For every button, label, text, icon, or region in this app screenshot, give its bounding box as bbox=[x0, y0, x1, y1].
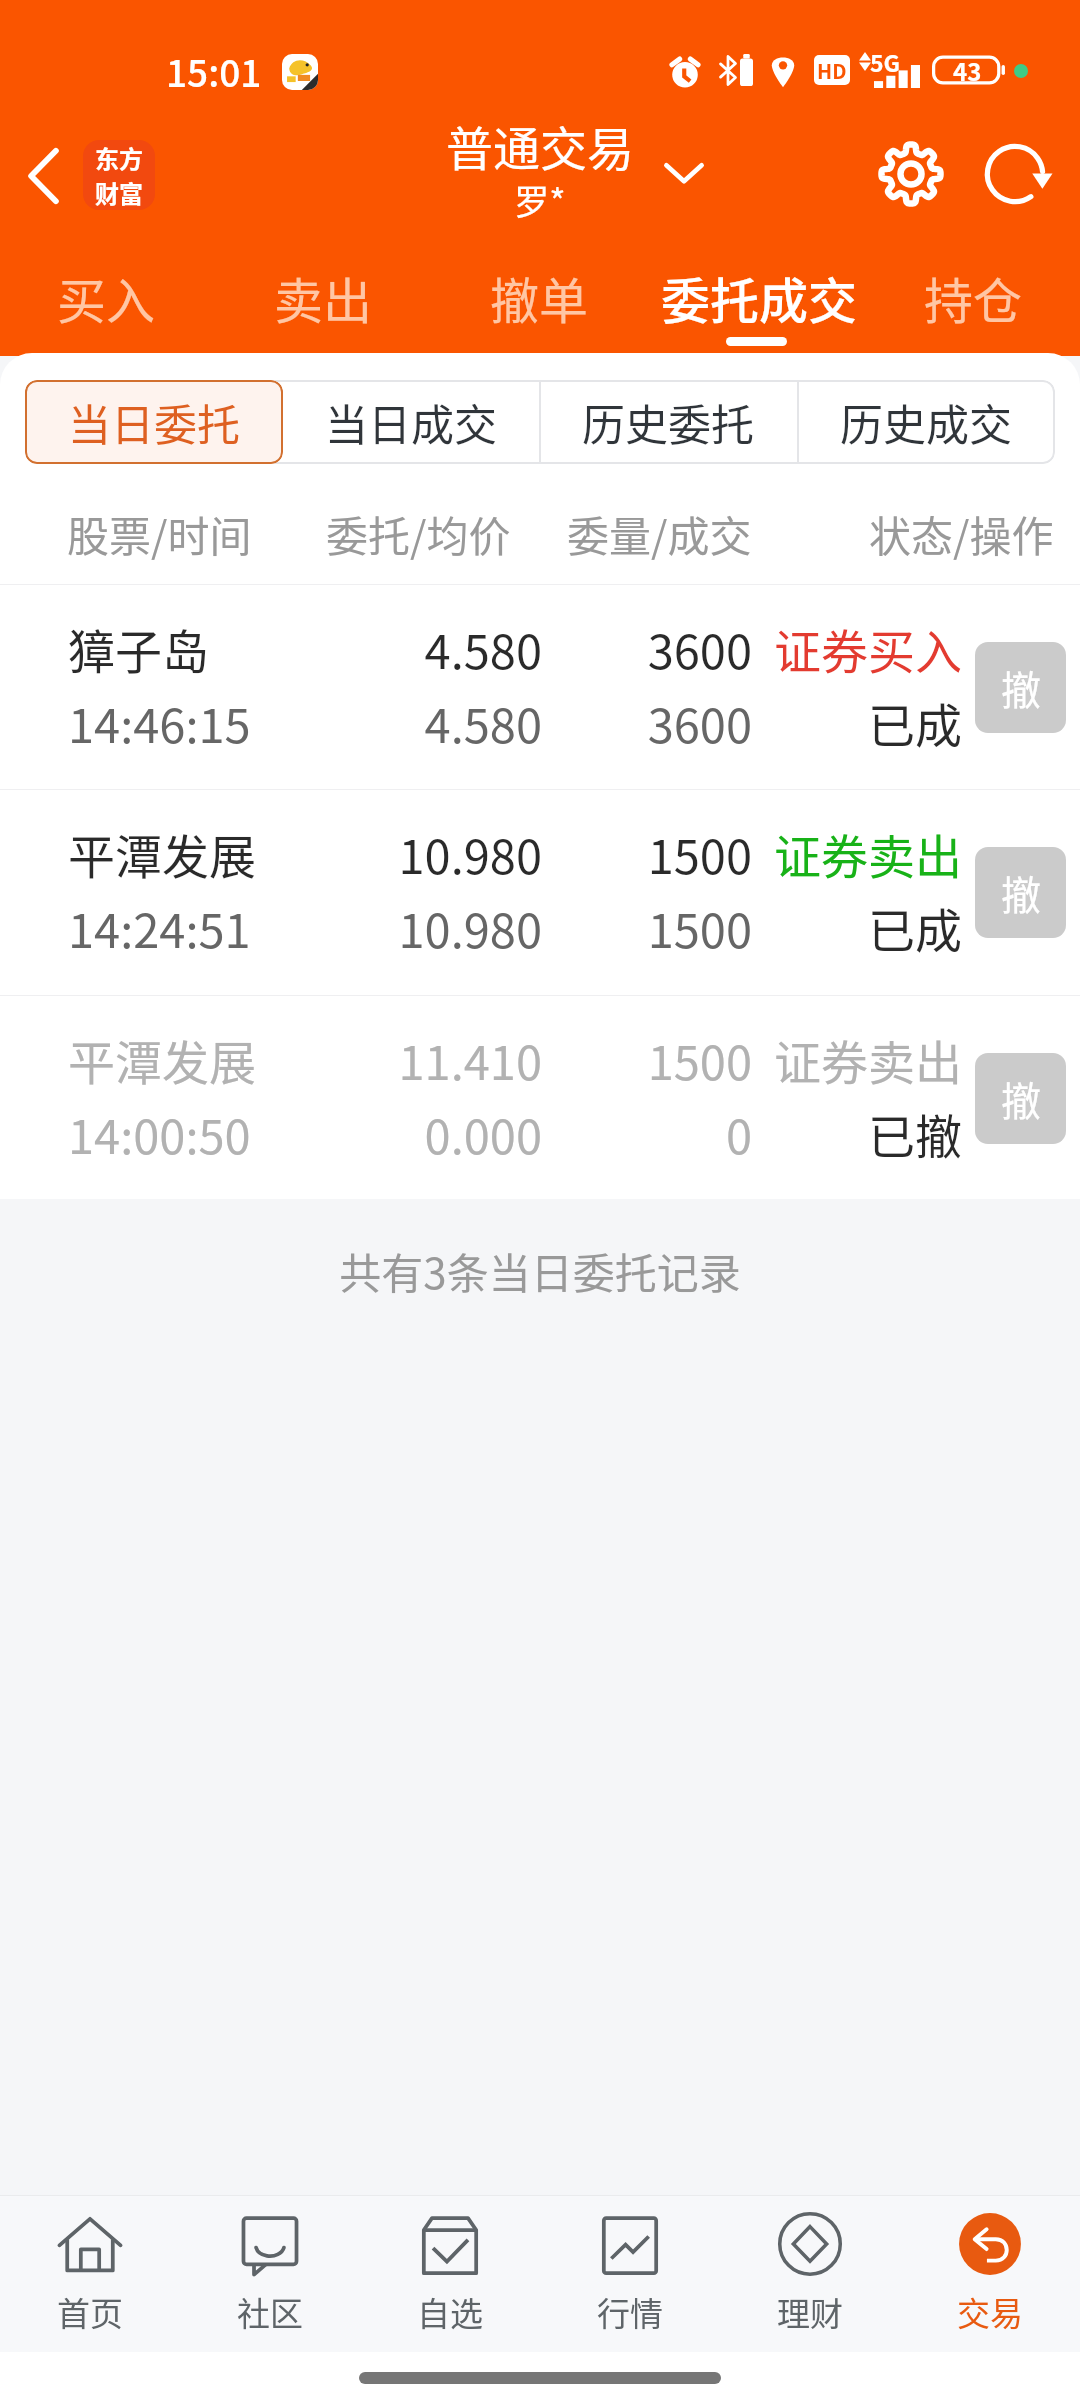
staticText: 财富 bbox=[95, 175, 143, 210]
button[interactable]: 当日成交 bbox=[282, 380, 539, 464]
staticText: 43 bbox=[953, 53, 982, 88]
staticText: 撤 bbox=[1001, 659, 1041, 717]
button[interactable]: 自选 bbox=[360, 2196, 540, 2352]
staticText: 历史委托 bbox=[582, 391, 754, 453]
staticText: 状态/操作 bbox=[869, 503, 1054, 564]
staticText: 证券卖出 bbox=[762, 1025, 962, 1093]
staticText: 股票/时间 bbox=[67, 503, 252, 564]
staticText: 证券卖出 bbox=[762, 819, 962, 887]
staticText: 1500 bbox=[564, 819, 752, 887]
staticText: 已成 bbox=[762, 893, 962, 961]
button[interactable]: 东方财富 bbox=[83, 140, 155, 210]
button[interactable]: 撤单 bbox=[475, 258, 603, 350]
staticText: 卖出 bbox=[274, 262, 373, 333]
button[interactable]: 首页 bbox=[0, 2196, 180, 2352]
staticText: 0 bbox=[564, 1099, 752, 1167]
staticText: 撤 bbox=[1001, 1070, 1041, 1128]
button[interactable]: 理财 bbox=[720, 2196, 900, 2352]
staticText: 平潭发展 bbox=[68, 1025, 256, 1093]
staticText: 证券买入 bbox=[762, 614, 962, 682]
staticText: 社区 bbox=[237, 2288, 303, 2336]
button[interactable]: 历史委托 bbox=[539, 380, 797, 464]
staticText: 11.410 bbox=[230, 1025, 542, 1093]
staticText: 历史成交 bbox=[840, 391, 1012, 453]
button[interactable]: 行情 bbox=[540, 2196, 720, 2352]
staticText: 首页 bbox=[57, 2288, 123, 2336]
staticText: 东方 bbox=[95, 140, 143, 175]
staticText: 0.000 bbox=[230, 1099, 542, 1167]
staticText: 当日委托 bbox=[68, 391, 240, 453]
staticText: 已成 bbox=[762, 688, 962, 756]
staticText: 行情 bbox=[597, 2288, 663, 2336]
staticText: 1500 bbox=[564, 1025, 752, 1093]
staticText: 獐子岛 bbox=[68, 614, 209, 682]
button[interactable]: 持仓 bbox=[909, 258, 1037, 350]
staticText: 3600 bbox=[564, 688, 752, 756]
button[interactable]: 撤 bbox=[975, 1053, 1066, 1144]
button[interactable]: 平潭发展 bbox=[0, 789, 1080, 989]
staticText: 5G bbox=[870, 45, 901, 78]
button[interactable]: 设置 bbox=[868, 131, 954, 217]
staticText: 14:00:50 bbox=[68, 1099, 251, 1167]
staticText: 交易 bbox=[957, 2288, 1023, 2336]
staticText: 14:24:51 bbox=[68, 893, 251, 961]
button[interactable]: 交易 bbox=[900, 2196, 1080, 2352]
staticText: 4.580 bbox=[230, 614, 542, 682]
button[interactable]: 买入 bbox=[42, 258, 170, 350]
staticText: 买入 bbox=[57, 262, 156, 333]
staticText: 1500 bbox=[564, 893, 752, 961]
button[interactable]: 平潭发展 bbox=[0, 995, 1080, 1195]
staticText: 已撤 bbox=[762, 1099, 962, 1167]
button[interactable]: 历史成交 bbox=[797, 380, 1055, 464]
staticText: 10.980 bbox=[230, 893, 542, 961]
button[interactable]: 委托成交 bbox=[647, 258, 871, 350]
staticText: 10.980 bbox=[230, 819, 542, 887]
staticText: 委托/均价 bbox=[326, 503, 511, 564]
button[interactable]: 返回 bbox=[0, 133, 86, 219]
staticText: 普通交易 bbox=[0, 111, 1080, 179]
button[interactable]: 当日委托 bbox=[25, 380, 283, 464]
staticText: HD bbox=[817, 56, 847, 85]
staticText: 撤 bbox=[1001, 864, 1041, 922]
staticText: 3600 bbox=[564, 614, 752, 682]
button[interactable]: 社区 bbox=[180, 2196, 360, 2352]
staticText: 自选 bbox=[417, 2288, 483, 2336]
staticText: 委托成交 bbox=[661, 262, 858, 333]
staticText: 委量/成交 bbox=[567, 503, 752, 564]
staticText: 平潭发展 bbox=[68, 819, 256, 887]
staticText: 14:46:15 bbox=[68, 688, 251, 756]
staticText: 罗* bbox=[0, 174, 1080, 225]
button[interactable]: 卖出 bbox=[259, 258, 387, 350]
staticText: 持仓 bbox=[924, 262, 1023, 333]
staticText: 理财 bbox=[777, 2288, 843, 2336]
button[interactable]: 刷新 bbox=[972, 131, 1058, 217]
button[interactable] bbox=[25, 380, 282, 464]
button[interactable]: 撤 bbox=[975, 642, 1066, 733]
button[interactable]: 獐子岛 bbox=[0, 584, 1080, 784]
staticText: 15:01 bbox=[166, 44, 262, 98]
button[interactable]: 撤 bbox=[975, 847, 1066, 938]
staticText: 当日成交 bbox=[325, 391, 497, 453]
staticText: 撤单 bbox=[490, 262, 589, 333]
staticText: 共有3条当日委托记录 bbox=[0, 1240, 1080, 1301]
staticText: 4.580 bbox=[230, 688, 542, 756]
